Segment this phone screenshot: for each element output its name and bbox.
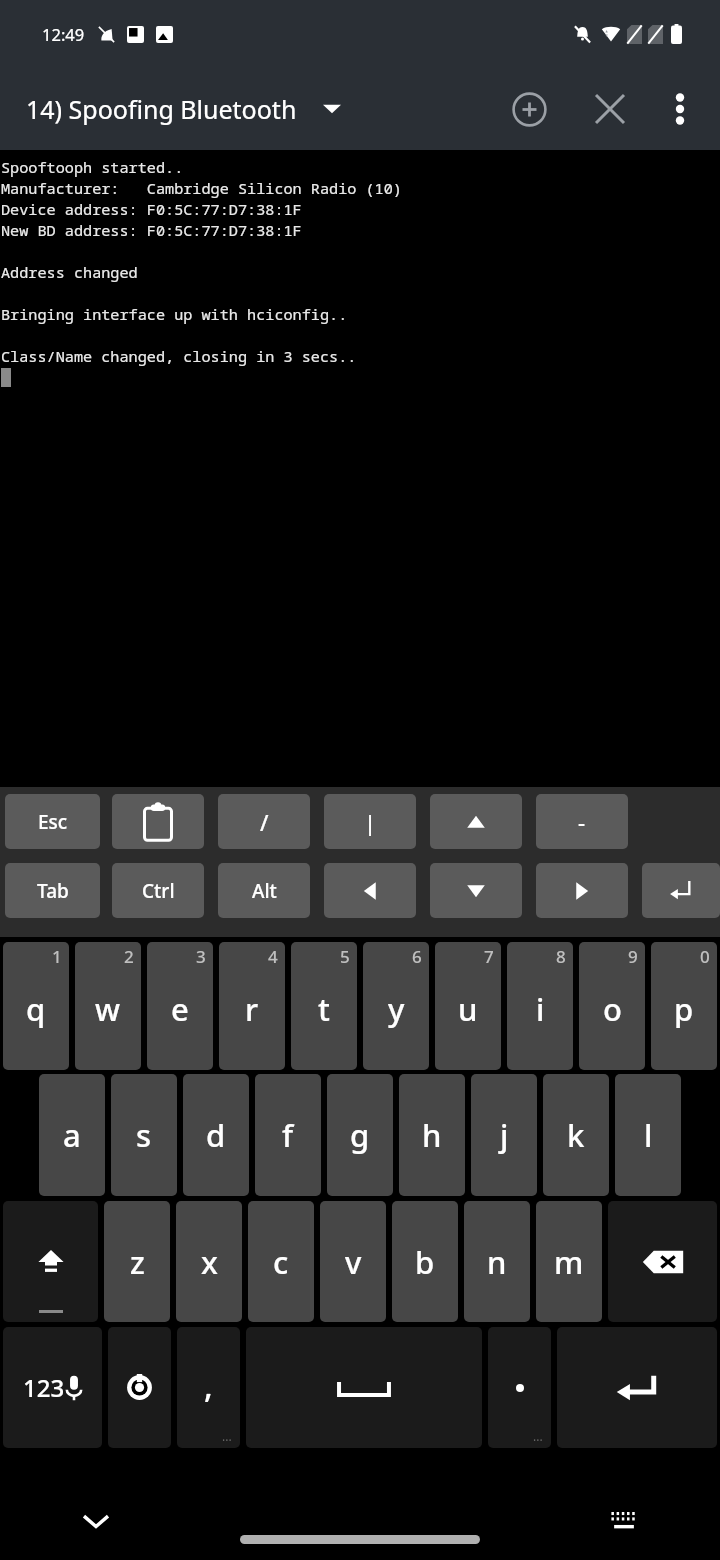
staticText: b	[415, 1241, 435, 1283]
button[interactable]: z	[104, 1201, 170, 1322]
button[interactable]: d	[183, 1074, 249, 1196]
button[interactable]: Hide keyboard	[72, 1497, 120, 1545]
button[interactable]: 9	[579, 942, 645, 1070]
button[interactable]: More options	[654, 83, 706, 135]
button[interactable]: 14) Spoofing Bluetooth	[26, 92, 341, 126]
button[interactable]: Close session	[582, 81, 638, 137]
button[interactable]: j	[471, 1074, 537, 1196]
button[interactable]: n	[464, 1201, 530, 1322]
button[interactable]: Shift	[3, 1201, 98, 1322]
button[interactable]: Arrow down	[430, 863, 522, 918]
button[interactable]: Arrow up	[430, 794, 522, 849]
button[interactable]: New session	[500, 80, 558, 138]
button[interactable]: -	[536, 794, 628, 849]
button[interactable]: 6	[363, 942, 429, 1070]
button[interactable]: 0	[651, 942, 717, 1070]
button[interactable]: Enter	[557, 1327, 717, 1448]
button[interactable]: ,	[177, 1327, 240, 1448]
staticText: Manufacturer: Cambridge Silicon Radio (1…	[1, 178, 402, 199]
button[interactable]: Arrow right	[536, 863, 628, 918]
button[interactable]: 8	[507, 942, 573, 1070]
staticText: 8	[556, 945, 566, 968]
staticText: d	[206, 1114, 226, 1156]
button[interactable]: 5	[291, 942, 357, 1070]
staticText: 14) Spoofing Bluetooth	[26, 92, 297, 126]
staticText: j	[500, 1114, 509, 1156]
button[interactable]: Enter	[642, 863, 720, 918]
staticText: p	[674, 988, 694, 1030]
staticText: Bringing interface up with hciconfig..	[1, 304, 348, 325]
button[interactable]: Spooftooph started..	[0, 150, 720, 787]
button[interactable]: v	[320, 1201, 386, 1322]
button[interactable]: 3	[147, 942, 213, 1070]
staticText: r	[245, 988, 259, 1030]
staticText: Device address: F0:5C:77:D7:38:1F	[1, 199, 302, 220]
staticText: c	[273, 1241, 289, 1283]
staticText: 2	[124, 945, 134, 968]
button[interactable]: 1	[3, 942, 69, 1070]
button[interactable]: a	[39, 1074, 105, 1196]
button[interactable]: Arrow left	[324, 863, 416, 918]
button[interactable]: f	[255, 1074, 321, 1196]
staticText: Spooftooph started..	[1, 157, 184, 178]
staticText: v	[345, 1241, 362, 1283]
button[interactable]: |	[324, 794, 416, 849]
staticText: w	[95, 988, 121, 1030]
staticText: 9	[628, 945, 638, 968]
staticText: Alt	[252, 878, 277, 904]
staticText: 4	[268, 945, 278, 968]
staticText: ,	[204, 1364, 213, 1408]
staticText: g	[350, 1114, 370, 1156]
button[interactable]: Switch keyboard	[600, 1497, 648, 1545]
staticText: New BD address: F0:5C:77:D7:38:1F	[1, 220, 302, 241]
staticText: Class/Name changed, closing in 3 secs..	[1, 346, 357, 367]
staticText: e	[171, 988, 189, 1030]
button[interactable]: /	[218, 794, 310, 849]
button[interactable]: 4	[219, 942, 285, 1070]
staticText: 0	[700, 945, 710, 968]
staticText: q	[26, 988, 46, 1030]
button[interactable]: g	[327, 1074, 393, 1196]
button[interactable]: b	[392, 1201, 458, 1322]
button[interactable]: 7	[435, 942, 501, 1070]
staticText: i	[536, 988, 545, 1030]
button[interactable]: Emoji and settings	[108, 1327, 171, 1448]
staticText: 1	[52, 945, 62, 968]
button[interactable]: Esc	[5, 794, 100, 849]
button[interactable]: Space	[246, 1327, 482, 1448]
staticText: m	[554, 1241, 584, 1283]
staticText: 12:49	[42, 23, 85, 45]
button[interactable]: Symbols and voice input	[3, 1327, 102, 1448]
staticText: /	[260, 807, 269, 837]
button[interactable]: c	[248, 1201, 314, 1322]
button[interactable]: Backspace	[608, 1201, 717, 1322]
staticText: a	[63, 1114, 81, 1156]
button[interactable]: k	[543, 1074, 609, 1196]
button[interactable]: Alt	[218, 863, 310, 918]
staticText: Ctrl	[142, 878, 175, 904]
staticText: |	[364, 807, 377, 837]
button[interactable]: x	[176, 1201, 242, 1322]
button[interactable]: Tab	[5, 863, 100, 918]
staticText: z	[130, 1241, 145, 1283]
button[interactable]: l	[615, 1074, 681, 1196]
button[interactable]: ...	[488, 1327, 551, 1448]
staticText: f	[282, 1114, 294, 1156]
staticText: t	[318, 988, 330, 1030]
staticText: Esc	[38, 809, 68, 835]
button[interactable]: Paste from clipboard	[112, 794, 204, 849]
staticText: n	[487, 1241, 507, 1283]
button[interactable]: s	[111, 1074, 177, 1196]
staticText: s	[136, 1114, 152, 1156]
button[interactable]: m	[536, 1201, 602, 1322]
staticText: y	[388, 988, 405, 1030]
staticText: o	[603, 988, 622, 1030]
staticText: 123	[23, 1371, 65, 1404]
button[interactable]: h	[399, 1074, 465, 1196]
staticText: x	[201, 1241, 218, 1283]
button[interactable]: Ctrl	[112, 863, 204, 918]
button[interactable]: 2	[75, 942, 141, 1070]
staticText: 6	[412, 945, 422, 968]
staticText: ...	[533, 1428, 543, 1444]
